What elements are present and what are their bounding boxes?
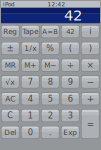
staticText: . xyxy=(49,128,52,137)
button[interactable]: M+ xyxy=(21,59,40,72)
staticText: 8 xyxy=(48,77,53,87)
staticText: C xyxy=(7,111,13,120)
button[interactable]: ÷ xyxy=(61,59,80,72)
staticText: 6 xyxy=(68,94,73,104)
staticText: 4 xyxy=(28,94,33,104)
button[interactable]: Tape xyxy=(21,25,40,38)
staticText: √x xyxy=(5,77,15,86)
button[interactable]: Del xyxy=(1,126,20,139)
staticText: − xyxy=(87,77,94,87)
staticText: % xyxy=(46,44,54,53)
staticText: 3 xyxy=(68,111,73,120)
staticText: ± xyxy=(7,44,14,53)
staticText: M+ xyxy=(24,61,36,69)
button[interactable]: 6 xyxy=(61,92,80,105)
staticText: ( xyxy=(69,43,72,53)
staticText: A=B xyxy=(42,28,58,35)
staticText: Reg xyxy=(3,27,17,36)
staticText: 9 xyxy=(68,77,73,87)
staticText: iPod xyxy=(3,1,15,7)
button[interactable]: ( xyxy=(61,42,80,55)
button[interactable]: 9 xyxy=(61,75,80,89)
staticText: ) xyxy=(89,43,92,53)
staticText: Exp xyxy=(63,128,77,137)
button[interactable]: 7 xyxy=(21,75,40,89)
button[interactable]: = xyxy=(81,109,100,139)
button[interactable]: 3 xyxy=(61,109,80,122)
button[interactable]: Reg xyxy=(1,25,20,38)
button[interactable]: 42 xyxy=(61,25,80,38)
button[interactable]: Exp xyxy=(61,126,80,139)
button[interactable]: 1 xyxy=(21,109,40,122)
staticText: 1 xyxy=(28,111,33,120)
staticText: × xyxy=(87,60,94,70)
button[interactable]: 4 xyxy=(21,92,40,105)
button[interactable]: − xyxy=(81,75,100,89)
staticText: 2 xyxy=(48,111,53,120)
button[interactable]: 5 xyxy=(41,92,60,105)
staticText: 7 xyxy=(28,77,33,87)
staticText: 1/x xyxy=(24,44,36,53)
button[interactable]: AC xyxy=(1,92,20,105)
staticText: ÷ xyxy=(67,60,74,70)
staticText: 0 xyxy=(28,128,33,137)
button[interactable]: × xyxy=(81,59,100,72)
staticText: 42 xyxy=(66,28,74,35)
button[interactable]: 1/x xyxy=(21,42,40,55)
staticText: AC xyxy=(5,94,15,103)
button[interactable]: . xyxy=(41,126,60,139)
staticText: MR xyxy=(5,61,16,69)
button[interactable]: i xyxy=(81,25,100,38)
button[interactable]: M− xyxy=(41,59,60,72)
button[interactable]: MR xyxy=(1,59,20,72)
button[interactable]: 0 xyxy=(21,126,40,139)
staticText: = xyxy=(87,119,94,129)
staticText: M− xyxy=(44,61,56,69)
button[interactable]: ± xyxy=(1,42,20,55)
staticText: 5 xyxy=(48,94,53,104)
staticText: Del xyxy=(4,128,16,137)
button[interactable]: C xyxy=(1,109,20,122)
button[interactable]: 2 xyxy=(41,109,60,122)
button[interactable]: ) xyxy=(81,42,100,55)
button[interactable]: √x xyxy=(1,75,20,89)
staticText: 12:42 xyxy=(47,1,65,7)
button[interactable]: 8 xyxy=(41,75,60,89)
button[interactable]: A=B xyxy=(41,25,60,38)
staticText: + xyxy=(87,94,94,104)
staticText: 42 xyxy=(64,7,82,24)
button[interactable]: % xyxy=(41,42,60,55)
staticText: Tape xyxy=(22,27,38,36)
staticText: i xyxy=(89,27,91,36)
button[interactable]: + xyxy=(81,92,100,105)
